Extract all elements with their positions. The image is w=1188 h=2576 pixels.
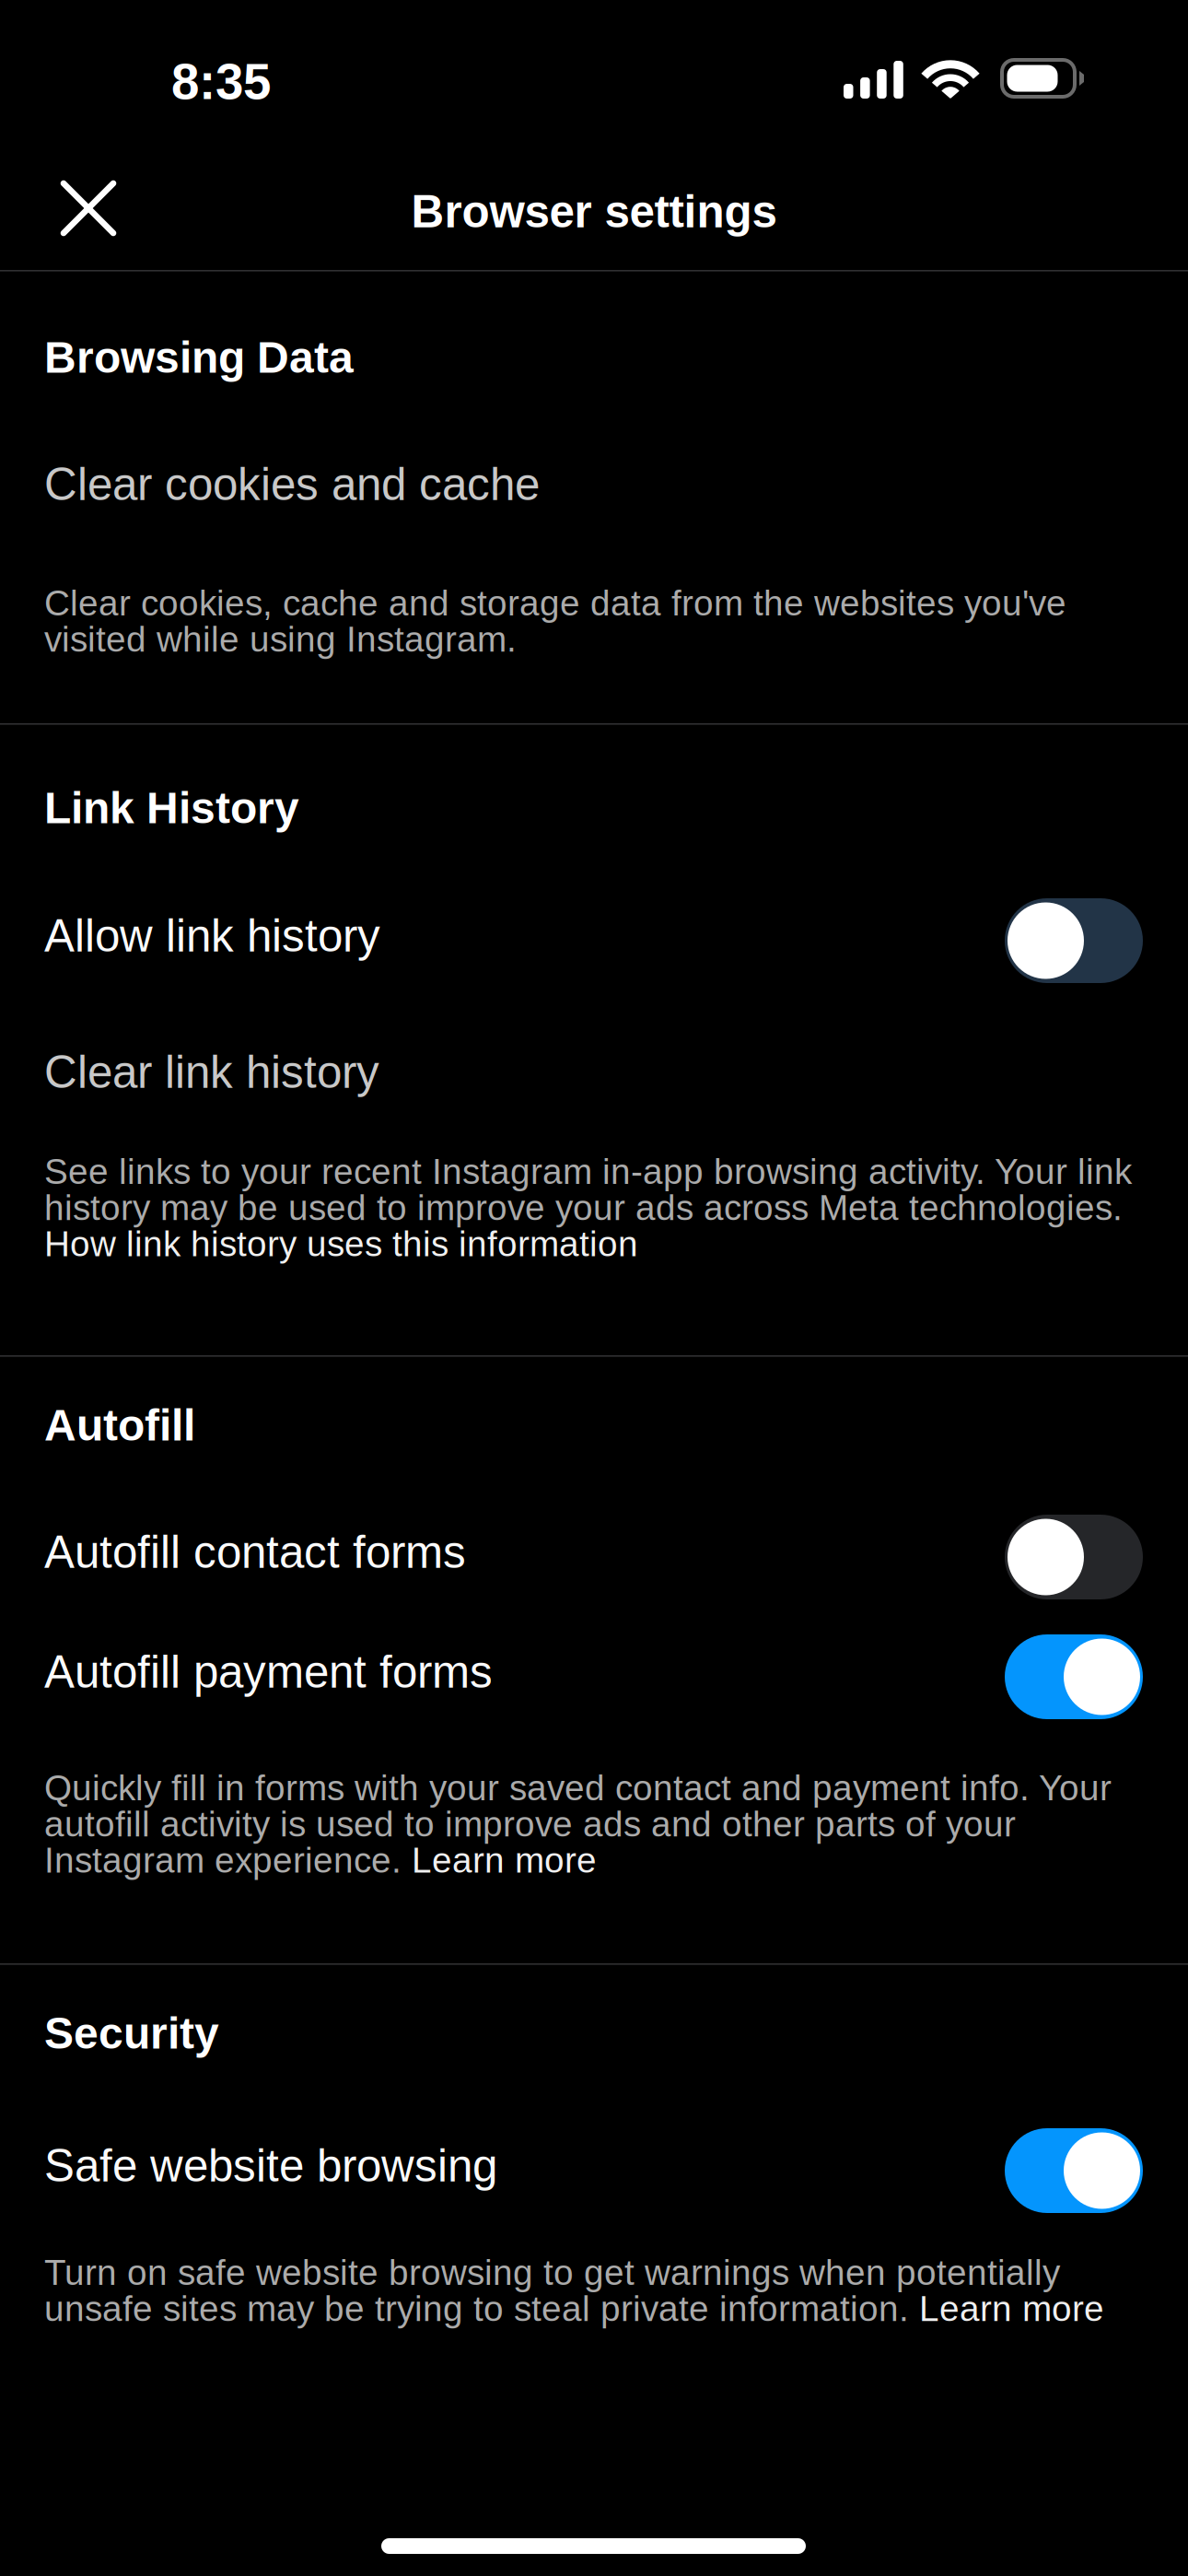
staticText: Clear link history bbox=[44, 1047, 379, 1097]
button[interactable]: Autofill contact forms bbox=[1005, 1515, 1143, 1599]
staticText: Clear cookies and cache bbox=[44, 459, 540, 510]
button[interactable]: Allow link history bbox=[1005, 898, 1143, 983]
staticText: Safe website browsing bbox=[44, 2140, 497, 2191]
staticText: Browser settings bbox=[411, 186, 777, 237]
button[interactable]: Clear cookies and cache bbox=[0, 426, 1188, 536]
staticText: Allow link history bbox=[44, 910, 380, 961]
button[interactable]: Close bbox=[28, 147, 149, 269]
button[interactable]: Allow link history bbox=[0, 876, 1188, 1003]
staticText: Browsing Data bbox=[44, 333, 354, 382]
button[interactable]: Safe website browsing bbox=[0, 2106, 1188, 2233]
staticText: Turn on safe website browsing to get war… bbox=[44, 2253, 1104, 2329]
staticText: Autofill bbox=[44, 1400, 195, 1450]
staticText: Security bbox=[44, 2008, 219, 2058]
staticText: See links to your recent Instagram in-ap… bbox=[44, 1152, 1132, 1264]
staticText: Clear cookies, cache and storage data fr… bbox=[44, 583, 1066, 659]
button[interactable]: Clear link history bbox=[0, 1013, 1188, 1124]
staticText: Autofill payment forms bbox=[44, 1646, 493, 1697]
button[interactable]: Autofill contact forms bbox=[0, 1493, 1188, 1620]
button[interactable]: Autofill payment forms bbox=[1005, 1634, 1143, 1719]
button[interactable]: Safe website browsing bbox=[1005, 2128, 1143, 2213]
staticText: Autofill contact forms bbox=[44, 1527, 466, 1577]
staticText: 8:35 bbox=[171, 53, 271, 110]
staticText: Quickly fill in forms with your saved co… bbox=[44, 1768, 1112, 1880]
button[interactable]: Autofill payment forms bbox=[0, 1612, 1188, 1739]
staticText: Link History bbox=[44, 783, 299, 833]
